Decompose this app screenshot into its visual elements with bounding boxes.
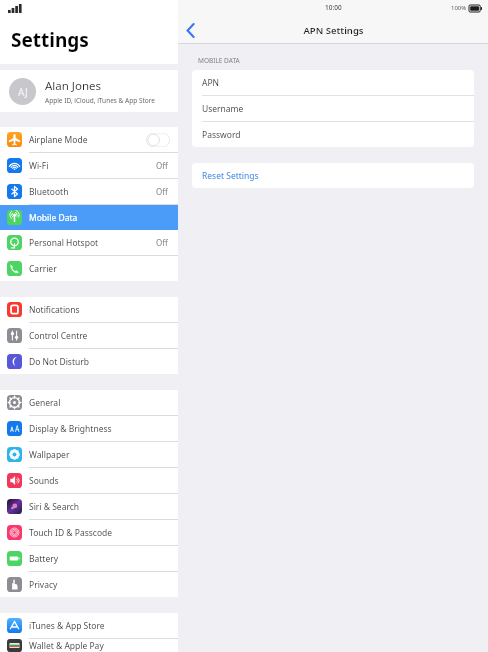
staticText: Bluetooth bbox=[29, 186, 69, 198]
staticText: APN Settings bbox=[303, 24, 364, 37]
staticText: iTunes & App Store bbox=[29, 620, 105, 632]
button[interactable]: Password bbox=[192, 122, 474, 147]
staticText: Reset Settings bbox=[202, 170, 259, 182]
button[interactable]: AJ bbox=[0, 70, 178, 112]
staticText: 100% bbox=[451, 4, 467, 12]
staticText: Wallet & Apple Pay bbox=[29, 640, 104, 652]
button[interactable]: Touch ID & Passcode bbox=[0, 520, 178, 545]
staticText: 10:00 bbox=[325, 3, 342, 12]
staticText: APN bbox=[202, 77, 220, 89]
staticText: MOBILE DATA bbox=[198, 56, 240, 65]
staticText: Sounds bbox=[29, 475, 59, 487]
button[interactable]: Back bbox=[178, 18, 202, 42]
button[interactable]: Wallpaper bbox=[0, 442, 178, 467]
button[interactable]: Do Not Disturb bbox=[0, 349, 178, 374]
staticText: Battery bbox=[29, 553, 59, 565]
staticText: Password bbox=[202, 129, 241, 141]
staticText: Wi-Fi bbox=[29, 160, 49, 172]
staticText: Carrier bbox=[29, 263, 57, 275]
button[interactable]: Reset Settings bbox=[192, 163, 474, 188]
button[interactable]: Personal Hotspot bbox=[0, 230, 178, 255]
button[interactable]: Sounds bbox=[0, 468, 178, 493]
button[interactable]: Battery bbox=[0, 546, 178, 571]
staticText: AJ bbox=[18, 85, 28, 99]
button[interactable]: Display & Brightness bbox=[0, 416, 178, 441]
staticText: Privacy bbox=[29, 579, 58, 591]
button[interactable]: Username bbox=[192, 96, 474, 121]
staticText: Off bbox=[156, 186, 168, 197]
staticText: Display & Brightness bbox=[29, 423, 112, 435]
staticText: Notifications bbox=[29, 304, 80, 316]
button[interactable]: iTunes & App Store bbox=[0, 613, 178, 638]
staticText: Alan Jones bbox=[45, 78, 102, 94]
button[interactable]: Privacy bbox=[0, 572, 178, 597]
staticText: Username bbox=[202, 103, 244, 115]
button[interactable]: Bluetooth bbox=[0, 179, 178, 204]
staticText: Off bbox=[156, 237, 168, 248]
staticText: General bbox=[29, 397, 61, 409]
staticText: Apple ID, iCloud, iTunes & App Store bbox=[45, 96, 155, 105]
staticText: Personal Hotspot bbox=[29, 237, 99, 249]
staticText: Airplane Mode bbox=[29, 134, 88, 146]
button[interactable]: Control Centre bbox=[0, 323, 178, 348]
staticText: Wallpaper bbox=[29, 449, 70, 461]
button[interactable]: Airplane Mode bbox=[0, 127, 178, 152]
button[interactable]: Mobile Data bbox=[0, 205, 178, 230]
button[interactable]: Siri & Search bbox=[0, 494, 178, 519]
button[interactable]: Wi-Fi bbox=[0, 153, 178, 178]
button[interactable]: General bbox=[0, 390, 178, 415]
staticText: Mobile Data bbox=[29, 212, 78, 224]
button[interactable]: Notifications bbox=[0, 297, 178, 322]
staticText: Off bbox=[156, 160, 168, 171]
staticText: Control Centre bbox=[29, 330, 88, 342]
staticText: Touch ID & Passcode bbox=[29, 527, 113, 539]
button[interactable]: Carrier bbox=[0, 256, 178, 281]
button[interactable]: Wallet & Apple Pay bbox=[0, 639, 178, 652]
staticText: Settings bbox=[11, 27, 89, 53]
staticText: Do Not Disturb bbox=[29, 356, 89, 368]
staticText: Siri & Search bbox=[29, 501, 80, 513]
button[interactable]: APN bbox=[192, 70, 474, 95]
